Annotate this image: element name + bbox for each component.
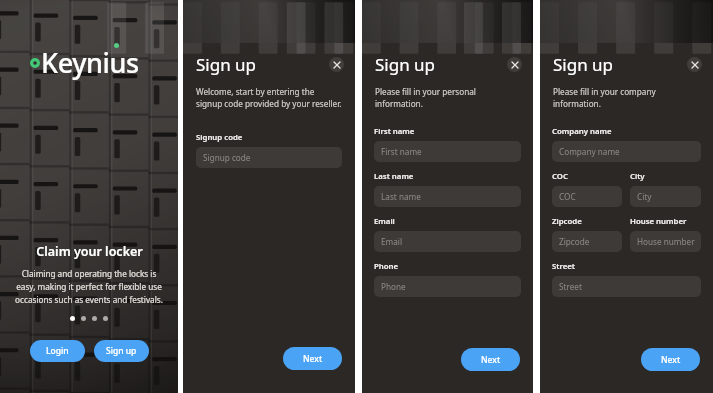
- staticText: Sign up: [196, 53, 329, 76]
- staticText: Email: [374, 216, 395, 227]
- button[interactable]: Login: [30, 340, 85, 362]
- button[interactable]: Phone: [374, 276, 521, 297]
- staticText: Next: [661, 354, 681, 366]
- button[interactable]: Next: [461, 348, 520, 371]
- button[interactable]: Signup code: [196, 147, 342, 168]
- staticText: First name: [381, 146, 422, 157]
- button[interactable]: Street: [552, 276, 701, 297]
- staticText: Last name: [381, 191, 421, 202]
- button[interactable]: First name: [374, 141, 521, 162]
- button[interactable]: [81, 316, 86, 321]
- staticText: COC: [559, 191, 576, 202]
- staticText: Keynius: [41, 44, 139, 81]
- staticText: Zipcode: [552, 216, 582, 227]
- button[interactable]: House number: [630, 231, 701, 252]
- staticText: House number: [637, 236, 695, 247]
- button[interactable]: COC: [552, 186, 622, 207]
- button[interactable]: Close: [687, 57, 702, 72]
- staticText: Next: [303, 353, 323, 365]
- staticText: House number: [630, 216, 687, 227]
- staticText: Signup code: [196, 132, 243, 143]
- staticText: COC: [552, 171, 568, 182]
- staticText: Phone: [381, 281, 406, 292]
- button[interactable]: Zipcode: [552, 231, 622, 252]
- staticText: Phone: [374, 261, 399, 272]
- staticText: Company name: [559, 146, 620, 157]
- staticText: Email: [381, 236, 403, 247]
- staticText: Street: [559, 281, 582, 292]
- staticText: Please fill in your personal information…: [375, 86, 520, 109]
- button[interactable]: Email: [374, 231, 521, 252]
- staticText: Welcome, start by entering the signup co…: [196, 86, 342, 109]
- button[interactable]: Last name: [374, 186, 521, 207]
- staticText: Sign up: [106, 345, 137, 357]
- button[interactable]: Next: [641, 348, 700, 371]
- staticText: Company name: [552, 126, 612, 137]
- button[interactable]: [92, 316, 97, 321]
- staticText: Login: [46, 345, 69, 357]
- button[interactable]: Close: [507, 57, 522, 72]
- staticText: Sign up: [375, 53, 507, 76]
- staticText: Signup code: [203, 152, 251, 163]
- staticText: Street: [552, 261, 575, 272]
- staticText: Please fill in your company information.: [553, 86, 700, 109]
- staticText: Zipcode: [559, 236, 590, 247]
- staticText: Next: [481, 354, 501, 366]
- button[interactable]: Close: [329, 57, 344, 72]
- button[interactable]: Next: [283, 347, 342, 370]
- staticText: City: [637, 191, 652, 202]
- button[interactable]: [103, 316, 108, 321]
- button[interactable]: Company name: [552, 141, 701, 162]
- button[interactable]: [70, 316, 75, 321]
- staticText: First name: [374, 126, 415, 137]
- staticText: Claim your locker: [36, 243, 143, 260]
- staticText: Claiming and operating the locks is easy…: [14, 268, 164, 306]
- staticText: Sign up: [553, 53, 687, 76]
- staticText: City: [630, 171, 645, 182]
- staticText: Last name: [374, 171, 414, 182]
- button[interactable]: Sign up: [94, 340, 149, 362]
- button[interactable]: City: [630, 186, 701, 207]
